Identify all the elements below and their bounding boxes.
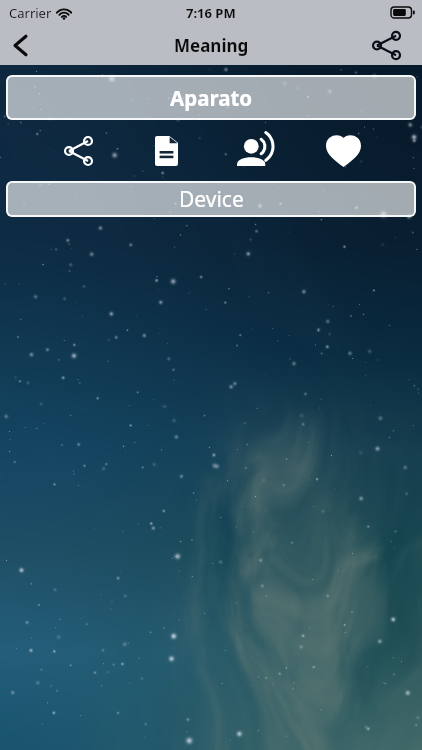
staticText: Device <box>179 185 244 214</box>
button[interactable]: Definition <box>122 120 210 181</box>
button[interactable]: Aparato <box>6 75 416 120</box>
staticText: Carrier <box>9 4 52 22</box>
button[interactable]: Favorite <box>299 120 388 181</box>
button[interactable]: Pronounce <box>210 120 299 181</box>
staticText: 7:16 PM <box>186 4 236 22</box>
button[interactable]: Share <box>365 25 407 65</box>
button[interactable]: Share <box>34 120 122 181</box>
staticText: Aparato <box>170 84 253 112</box>
staticText: Meaning <box>174 34 249 57</box>
button[interactable]: Back <box>0 25 40 65</box>
button[interactable]: Device <box>6 181 416 217</box>
